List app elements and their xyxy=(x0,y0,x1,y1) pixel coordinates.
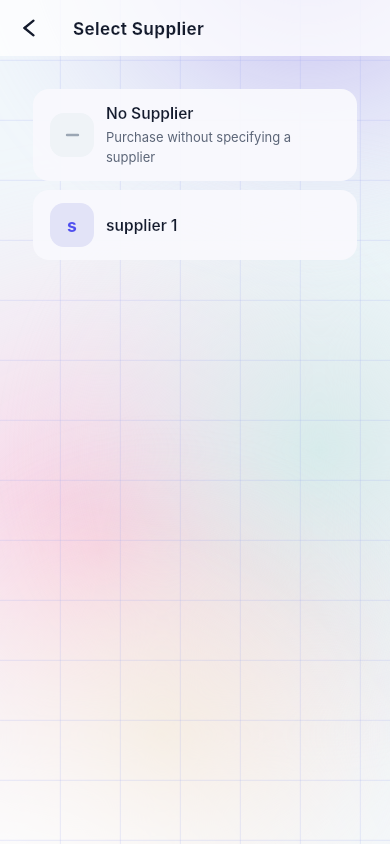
button[interactable]: s xyxy=(33,190,357,260)
button[interactable]: No Supplier xyxy=(33,89,357,181)
staticText: supplier 1 xyxy=(106,212,178,235)
staticText: Select Supplier xyxy=(73,19,205,40)
staticText: s xyxy=(67,215,77,236)
staticText: Purchase without specifying a supplier xyxy=(106,126,340,166)
button[interactable]: Back xyxy=(8,8,48,48)
staticText: No Supplier xyxy=(106,100,194,123)
